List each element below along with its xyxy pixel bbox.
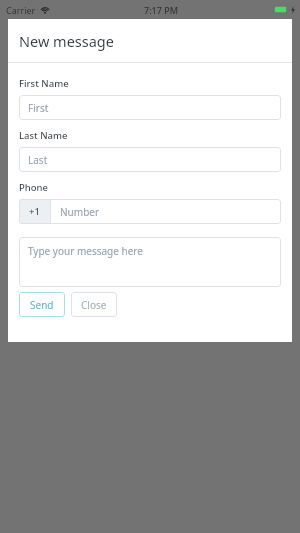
staticText: +1	[29, 205, 40, 218]
button[interactable]: First	[19, 95, 281, 120]
staticText: First	[28, 101, 49, 115]
button[interactable]: Last	[19, 147, 281, 172]
staticText: Last	[28, 153, 48, 167]
staticText: Phone	[19, 181, 48, 194]
staticText: New message	[19, 31, 114, 51]
button[interactable]: Send	[19, 292, 65, 317]
staticText: Close	[81, 298, 107, 312]
staticText: Last Name	[19, 129, 68, 142]
button[interactable]: Close	[71, 292, 117, 317]
staticText: Number	[60, 205, 100, 219]
button[interactable]: Type your message here	[19, 237, 281, 287]
staticText: Carrier	[6, 4, 36, 16]
staticText: 7:17 PM	[144, 4, 178, 16]
staticText: Type your message here	[28, 244, 143, 258]
other: Wi-Fi	[40, 6, 50, 14]
staticText: First Name	[19, 77, 69, 90]
other: Battery	[273, 5, 290, 14]
button[interactable]: +1	[19, 199, 281, 224]
staticText: Send	[30, 298, 54, 312]
